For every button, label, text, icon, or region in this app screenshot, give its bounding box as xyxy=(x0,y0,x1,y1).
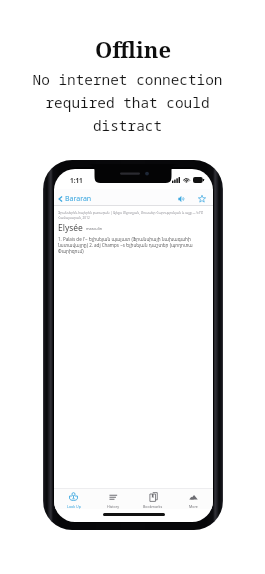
staticText: Bararan xyxy=(65,194,92,204)
staticText: Offline xyxy=(95,34,171,64)
button[interactable]: History xyxy=(93,489,133,509)
staticText: 1. Palais de l'~ Ելիսեյան պալատ (Ֆրանսիա… xyxy=(58,236,211,254)
staticText: Elysée xyxy=(58,222,83,234)
staticText: Look Up xyxy=(67,504,81,509)
button[interactable]: Bararan xyxy=(57,192,93,206)
staticText: masculin xyxy=(86,226,102,231)
button[interactable]: Bookmarks xyxy=(133,489,173,509)
button[interactable]: Pronounce xyxy=(176,193,188,205)
staticText: More xyxy=(189,504,198,509)
staticText: No internet connection required that cou… xyxy=(0,70,260,135)
button[interactable]: Look Up xyxy=(54,489,93,509)
button[interactable]: More xyxy=(173,489,213,509)
staticText: 1:11 xyxy=(70,176,83,185)
button[interactable]: Bookmark xyxy=(196,193,208,205)
staticText: Bookmarks xyxy=(143,504,163,509)
staticText: History xyxy=(107,504,120,509)
staticText: Ֆրանսերեն-հայերեն բառարան | Ալեքս Մկրտչյ… xyxy=(58,211,211,220)
